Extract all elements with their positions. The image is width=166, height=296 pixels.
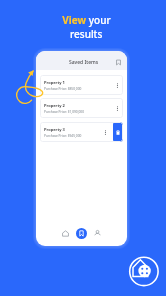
button[interactable]: Profile: [92, 228, 103, 239]
staticText: Saved Items: [69, 59, 99, 66]
button[interactable]: Delete: [113, 122, 123, 142]
staticText: Property 1: [44, 80, 65, 85]
button[interactable]: Property 1: [40, 75, 123, 95]
button[interactable]: App logo: [129, 256, 159, 286]
button[interactable]: Saved: [76, 228, 87, 239]
staticText: Purchase Price: $945,000: [44, 134, 82, 138]
staticText: Property 3: [44, 127, 65, 132]
button[interactable]: Property 2: [40, 98, 123, 118]
staticText: Purchase Price: $850,000: [44, 87, 82, 91]
button[interactable]: Home: [60, 228, 71, 239]
staticText: Purchase Price: $1,090,000: [44, 110, 84, 114]
staticText: results: [70, 27, 103, 41]
button[interactable]: Property 3: [40, 122, 123, 142]
staticText: View your: [62, 13, 111, 27]
button[interactable]: Bookmarks: [115, 59, 122, 66]
staticText: Property 2: [44, 103, 65, 108]
